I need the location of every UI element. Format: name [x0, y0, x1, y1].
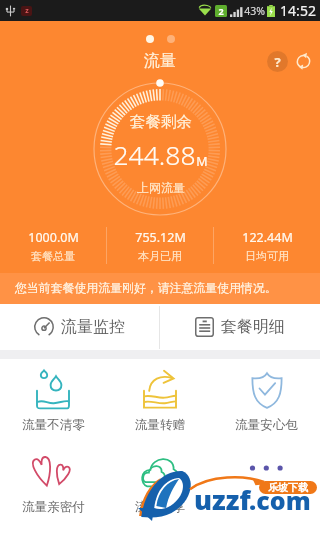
button[interactable]: 帮助 [267, 51, 288, 72]
button[interactable]: 122.44M [214, 218, 320, 273]
staticText: M [196, 153, 208, 170]
staticText: 套餐明细 [221, 317, 285, 337]
staticText: 流量亲密付 [22, 499, 85, 515]
staticText: 乐坡下载 [268, 481, 308, 494]
staticText: 122.44M [242, 229, 293, 246]
button[interactable]: 流量转赠 [106, 359, 213, 441]
button[interactable]: 流量监控 [0, 304, 159, 350]
staticText: 流量监控 [61, 317, 125, 337]
staticText: 1000.0M [28, 229, 79, 246]
staticText: 流量转赠 [135, 417, 185, 433]
staticText: 流量安心包 [235, 417, 298, 433]
staticText: 流量共享 [135, 499, 185, 515]
staticText: uzzf [194, 481, 251, 518]
button[interactable]: 流量安心包 [213, 359, 320, 441]
staticText: 14:52 [280, 1, 316, 20]
button[interactable]: 刷新 [292, 50, 314, 72]
staticText: 755.12M [135, 229, 186, 246]
button[interactable]: 流量共享 [106, 441, 213, 523]
staticText: 244.88 [113, 137, 196, 173]
staticText: 套餐剩余 [130, 112, 192, 132]
button[interactable]: 套餐明细 [160, 304, 320, 350]
staticText: 43% [244, 4, 265, 18]
staticText: .com [249, 483, 311, 517]
button[interactable]: 流量不清零 [0, 359, 106, 441]
staticText: 流量 [144, 51, 176, 71]
staticText: z [25, 6, 29, 16]
staticText: 套餐总量 [31, 249, 75, 263]
staticText: 2 [218, 5, 224, 17]
button[interactable]: 755.12M [107, 218, 213, 273]
staticText: ? [274, 53, 281, 71]
button[interactable]: 流量亲密付 [0, 441, 106, 523]
staticText: 日均可用 [245, 249, 289, 263]
button[interactable]: 1000.0M [0, 218, 106, 273]
staticText: 流量不清零 [22, 417, 85, 433]
staticText: 上网流量 [137, 180, 185, 195]
staticText: 您当前套餐使用流量刚好，请注意流量使用情况。 [15, 281, 277, 296]
staticText: 本月已用 [138, 249, 182, 263]
